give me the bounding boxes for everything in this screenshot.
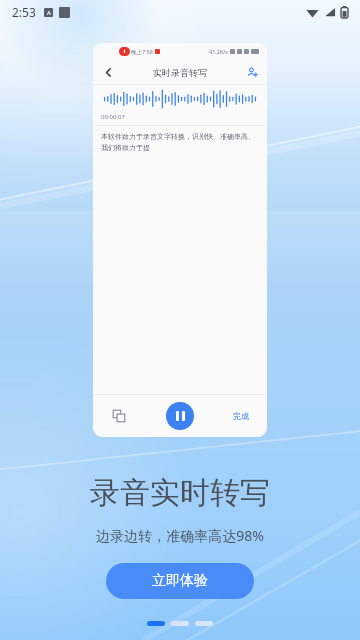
button[interactable]: Pause recording	[166, 402, 194, 430]
button[interactable]: 完成	[231, 407, 251, 425]
staticText: A	[47, 9, 51, 17]
staticText: 完成	[233, 411, 249, 421]
staticText: 立即体验	[152, 572, 208, 590]
staticText: 41.2K/s	[209, 48, 228, 55]
staticText: 边录边转，准确率高达98%	[96, 526, 264, 545]
button[interactable]: Back	[100, 64, 116, 80]
staticText: 本软件致力于录音文字转换，识别快、准确率高、我们将致力于提	[101, 132, 259, 152]
staticText: 实时录音转写	[153, 67, 207, 78]
staticText: 晚上7:58	[131, 48, 153, 56]
staticText: 00:00:07	[101, 113, 125, 121]
button[interactable]: Add contact	[244, 64, 260, 80]
staticText: 2:53	[12, 4, 36, 20]
staticText: 录音实时转写	[90, 474, 270, 512]
button[interactable]: Split view	[109, 406, 129, 426]
button[interactable]: 立即体验	[106, 563, 254, 599]
